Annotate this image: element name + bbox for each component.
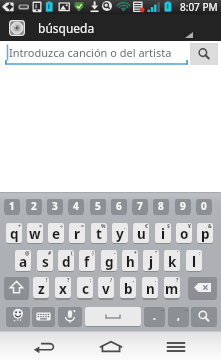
staticText: n (146, 280, 155, 298)
staticText: m (165, 280, 179, 298)
button[interactable]: Recent apps (148, 331, 204, 360)
staticText: ' (177, 250, 179, 257)
button[interactable]: s (37, 250, 53, 271)
button[interactable]: 9 (175, 199, 191, 213)
button[interactable]: , (168, 307, 189, 326)
button[interactable]: q (6, 223, 22, 243)
staticText: % (101, 223, 106, 230)
button[interactable]: y (112, 223, 128, 243)
staticText: = (81, 223, 84, 230)
staticText: * (134, 250, 137, 257)
button[interactable]: f (79, 250, 95, 271)
staticText: . (155, 277, 157, 284)
button[interactable]: e (48, 223, 64, 243)
button[interactable]: l (186, 250, 202, 271)
button[interactable]: i (155, 223, 171, 243)
staticText: # (48, 250, 52, 257)
button[interactable]: v (98, 277, 114, 298)
staticText: ? (176, 277, 179, 284)
button[interactable]: Shift (4, 277, 29, 298)
button[interactable]: 8 (153, 199, 169, 213)
button[interactable]: Keyboard settings (32, 307, 55, 326)
button[interactable]: 0 (196, 199, 212, 213)
button[interactable]: z (33, 277, 49, 298)
staticText: t (96, 225, 102, 243)
button[interactable]: 5 (90, 199, 106, 213)
staticText: c (82, 280, 89, 298)
button[interactable]: x (55, 277, 71, 298)
button[interactable]: d (58, 250, 74, 271)
button[interactable]: 1 (4, 199, 20, 213)
staticText: a (19, 253, 28, 271)
staticText: ·· (185, 307, 188, 314)
staticText: / (110, 277, 113, 284)
button[interactable]: j (143, 250, 159, 271)
staticText: ·· (161, 307, 164, 314)
button[interactable]: h (122, 250, 138, 271)
staticText: d (62, 253, 71, 271)
staticText: búsqueda (38, 20, 95, 36)
staticText: + (18, 223, 21, 230)
staticText: 4 (73, 199, 79, 213)
button[interactable]: búsqueda (0, 14, 221, 41)
staticText: 8:07 PM (180, 0, 218, 14)
button[interactable]: o (176, 223, 192, 243)
button[interactable]: w (27, 223, 43, 243)
button[interactable]: 2 (26, 199, 42, 213)
button[interactable]: n (142, 277, 158, 298)
staticText: v (102, 280, 110, 298)
staticText: . (153, 309, 156, 323)
staticText: e (52, 225, 61, 243)
button[interactable]: Introduzca canción o del artista (5, 42, 188, 66)
staticText: 8 (158, 199, 164, 213)
button[interactable]: 3 (47, 199, 63, 213)
staticText: o (180, 225, 189, 243)
button[interactable]: Back (16, 331, 72, 360)
staticText: k (168, 253, 177, 271)
button[interactable]: b (120, 277, 136, 298)
button[interactable]: t (91, 223, 107, 243)
staticText: q (10, 225, 19, 243)
staticText: 0 (201, 199, 207, 213)
staticText: ¥ (188, 223, 191, 230)
button[interactable]: Search (190, 43, 218, 65)
staticText: y (116, 225, 124, 243)
button[interactable]: 6 (111, 199, 127, 213)
staticText: ; (90, 277, 92, 284)
staticText: 5 (95, 199, 101, 213)
button[interactable]: Home (83, 331, 139, 360)
staticText: " (155, 250, 158, 257)
button[interactable]: Backspace (188, 277, 217, 298)
button[interactable]: k (164, 250, 180, 271)
button[interactable]: Space (85, 307, 141, 326)
button[interactable]: r (69, 223, 85, 243)
staticText: , (133, 277, 135, 284)
staticText: , (177, 309, 180, 323)
button[interactable]: Emoji (6, 307, 30, 326)
button[interactable]: c (77, 277, 93, 298)
staticText: 9 (180, 199, 186, 213)
button[interactable]: Search (191, 307, 217, 326)
staticText: g (105, 253, 114, 271)
staticText: _ (124, 223, 127, 230)
staticText: f (84, 253, 90, 271)
staticText: 2 (31, 199, 37, 213)
staticText: j (149, 253, 154, 271)
staticText: - (114, 250, 116, 257)
button[interactable]: a (15, 250, 31, 271)
button[interactable]: u (133, 223, 149, 243)
button[interactable]: . (144, 307, 165, 326)
staticText: 3 (52, 199, 58, 213)
button[interactable]: 4 (68, 199, 84, 213)
button[interactable]: g (101, 250, 117, 271)
button[interactable]: m (164, 277, 180, 298)
button[interactable]: p (197, 223, 213, 243)
button[interactable]: 7 (132, 199, 148, 213)
staticText: Introduzca canción o del artista (9, 45, 172, 60)
other: More options (185, 32, 193, 38)
button[interactable]: Voice input (58, 307, 82, 326)
staticText: h (126, 253, 135, 271)
staticText: $ (167, 223, 170, 230)
staticText: € (145, 223, 148, 230)
staticText: b (124, 280, 133, 298)
